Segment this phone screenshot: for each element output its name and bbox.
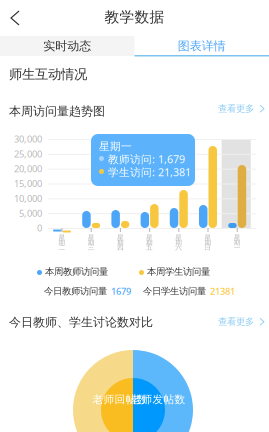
button[interactable]: 图表详情: [134, 36, 269, 56]
staticText: 星期一: [99, 140, 132, 153]
staticText: 教学数据: [104, 8, 164, 26]
staticText: 本周教师访问量: [45, 266, 108, 277]
staticText: 本周学生访问量: [147, 266, 210, 277]
staticText: 三: [88, 243, 95, 252]
button[interactable]: 实时动态: [0, 36, 134, 56]
staticText: 1679: [111, 285, 131, 297]
staticText: 二: [58, 243, 65, 252]
staticText: 老师发帖数: [130, 393, 185, 406]
staticText: 老师回帖数: [92, 393, 147, 406]
staticText: 五: [146, 243, 153, 252]
staticText: 教师访问: 1,679: [108, 152, 185, 166]
staticText: 星: [204, 233, 211, 242]
staticText: 30,000: [14, 133, 42, 145]
staticText: 四: [117, 243, 124, 252]
staticText: 星: [146, 233, 153, 242]
staticText: 一: [234, 243, 241, 252]
staticText: 今日教师、学生讨论数对比: [9, 315, 153, 330]
staticText: 六: [175, 243, 182, 252]
staticText: 星: [88, 233, 95, 242]
staticText: 期: [175, 238, 182, 247]
staticText: 25,000: [14, 148, 42, 160]
staticText: 期: [204, 238, 211, 247]
staticText: 10,000: [14, 192, 42, 204]
staticText: 今日学生访问量: [143, 285, 206, 297]
staticText: 5,000: [19, 207, 42, 219]
staticText: 查看更多: [218, 316, 254, 327]
staticText: 师生互动情况: [9, 66, 87, 82]
staticText: 查看更多: [218, 103, 254, 114]
button[interactable]: 查看更多: [218, 103, 266, 114]
staticText: 星: [58, 233, 65, 242]
staticText: 21381: [210, 285, 235, 297]
staticText: 15,000: [14, 177, 42, 190]
staticText: 期: [234, 238, 241, 247]
staticText: 今日教师访问量: [44, 285, 107, 297]
staticText: 日: [204, 243, 211, 252]
staticText: 期: [88, 238, 95, 247]
staticText: 期: [117, 238, 124, 247]
staticText: 图表详情: [178, 39, 226, 53]
staticText: 20,000: [14, 162, 42, 175]
staticText: 实时动态: [43, 39, 91, 53]
staticText: 期: [58, 238, 65, 247]
staticText: 0: [37, 222, 42, 234]
staticText: 学生访问: 21,381: [108, 165, 191, 179]
staticText: 期: [146, 238, 153, 247]
staticText: 星: [175, 233, 182, 242]
button[interactable]: 查看更多: [218, 316, 266, 327]
button[interactable]: Back: [2, 5, 28, 31]
staticText: 本周访问量趋势图: [9, 104, 105, 119]
staticText: 星: [117, 233, 124, 242]
staticText: 星: [234, 233, 241, 242]
